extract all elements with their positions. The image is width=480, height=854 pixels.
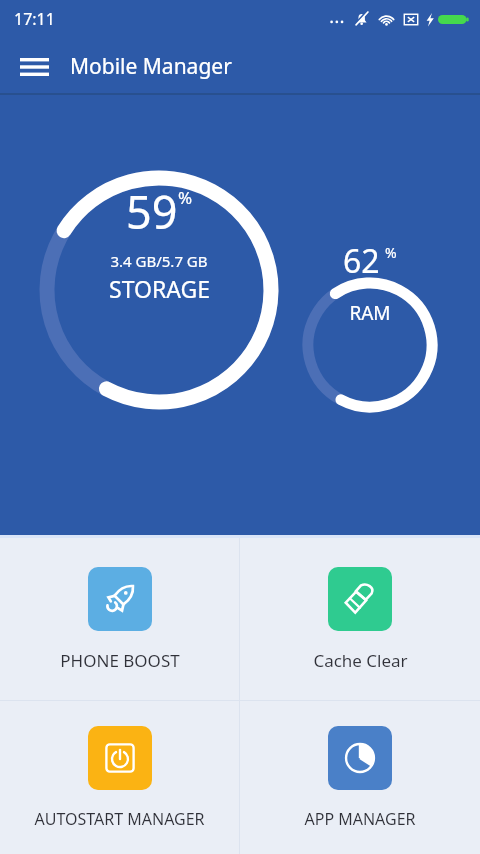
- staticText: 3.4 GB/5.7 GB: [110, 251, 208, 271]
- button[interactable]: AUTOSTART MANAGER: [0, 701, 239, 854]
- staticText: PHONE BOOST: [60, 649, 180, 672]
- staticText: %: [178, 186, 193, 209]
- button[interactable]: APP MANAGER: [240, 701, 480, 854]
- staticText: Cache Clear: [313, 649, 408, 672]
- staticText: RAM: [349, 300, 391, 326]
- staticText: 17:11: [14, 8, 55, 30]
- staticText: 59: [126, 181, 178, 242]
- staticText: 62: [343, 239, 380, 283]
- button[interactable]: Cache Clear: [240, 538, 480, 700]
- staticText: STORAGE: [109, 273, 210, 304]
- staticText: AUTOSTART MANAGER: [34, 808, 205, 830]
- button[interactable]: Open navigation menu: [8, 41, 60, 93]
- staticText: Mobile Manager: [70, 52, 232, 81]
- button[interactable]: PHONE BOOST: [0, 538, 239, 700]
- staticText: %: [385, 243, 397, 262]
- staticText: APP MANAGER: [304, 808, 416, 830]
